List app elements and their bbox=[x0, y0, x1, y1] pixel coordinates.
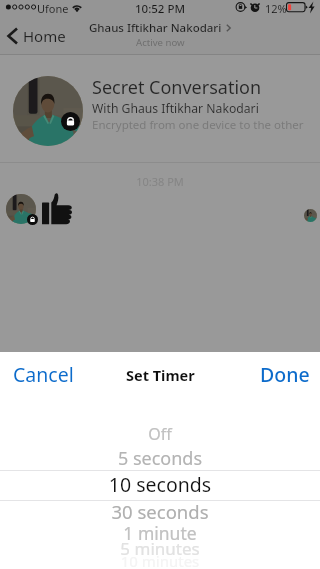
staticText: Done bbox=[260, 361, 310, 388]
staticText: 12% bbox=[265, 1, 287, 16]
button[interactable]: Home bbox=[0, 16, 74, 55]
button[interactable]: Off bbox=[0, 423, 320, 445]
staticText: 10:52 PM bbox=[0, 1, 320, 17]
staticText: Home bbox=[23, 26, 66, 46]
button[interactable]: Cancel bbox=[0, 352, 87, 396]
button[interactable]: Done bbox=[247, 352, 320, 396]
staticText: Cancel bbox=[13, 361, 74, 388]
button[interactable]: 1 minute bbox=[0, 521, 320, 545]
staticText: Ufone bbox=[37, 1, 69, 16]
button[interactable]: 5 minutes bbox=[0, 537, 320, 560]
staticText: Encrypted from one device to the other bbox=[92, 117, 304, 133]
staticText: Set Timer bbox=[126, 365, 195, 385]
staticText: Active now bbox=[136, 36, 185, 49]
button[interactable]: 5 seconds bbox=[0, 446, 320, 471]
staticText: Ghaus Iftikhar Nakodari bbox=[89, 20, 222, 36]
staticText: Secret Conversation bbox=[92, 75, 262, 100]
button[interactable]: 30 seconds bbox=[0, 499, 320, 524]
button[interactable]: 10 minutes bbox=[0, 551, 320, 569]
button[interactable]: 10 seconds bbox=[0, 471, 320, 498]
staticText: With Ghaus Iftikhar Nakodari bbox=[92, 100, 259, 117]
button[interactable]: Ghaus Iftikhar Nakodari bbox=[89, 20, 231, 49]
